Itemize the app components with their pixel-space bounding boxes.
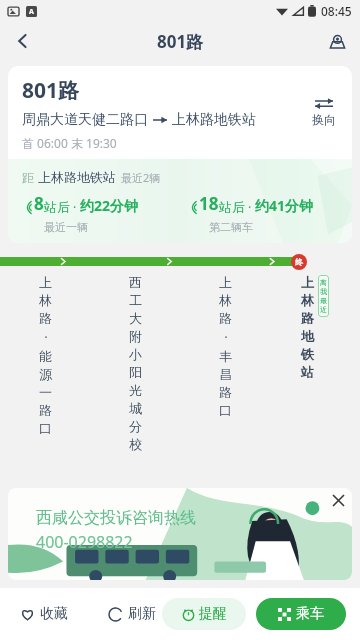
staticText: 收藏 [40,605,68,623]
staticText: 站后 [44,199,70,215]
staticText: 丰 [219,348,232,364]
staticText: 口 [39,420,52,436]
staticText: 附 [129,328,142,344]
staticText: 上林路地铁站 [38,169,116,185]
staticText: A [29,7,34,17]
staticText: 小 [129,346,142,362]
staticText: 上 [301,274,314,290]
staticText: 路 [39,310,52,326]
staticText: · [44,328,48,346]
staticText: 站 [301,364,314,380]
staticText: 提醒 [199,605,227,623]
button[interactable]: Map [320,24,354,58]
staticText: 校 [129,436,142,452]
staticText: · [73,199,77,215]
staticText: 最 [320,296,327,305]
staticText: 乘车 [296,605,324,623]
staticText: 光 [129,382,142,398]
staticText: 分 [129,418,142,434]
button[interactable]: Close ad [328,490,348,510]
staticText: 路 [219,384,232,400]
staticText: 刷新 [128,605,156,623]
button[interactable]: 收藏 [14,599,74,629]
staticText: · [248,199,252,215]
staticText: 约22分钟 [80,196,139,215]
staticText: 林 [39,292,52,308]
button[interactable]: 换向 [308,94,340,131]
staticText: 地 [301,328,314,344]
button[interactable]: 西咸公交投诉咨询热线 [8,488,352,580]
staticText: 上 [39,274,52,290]
staticText: 最近一辆 [44,220,88,234]
staticText: 一 [39,384,52,400]
staticText: 首 06:00 末 19:30 [22,135,117,151]
button[interactable]: 提醒 [162,598,246,630]
staticText: 终 [295,257,303,267]
staticText: 第二辆车 [209,220,253,234]
staticText: 站后 [219,199,245,215]
staticText: 离 [320,278,327,287]
staticText: 约41分钟 [255,196,314,215]
staticText: 路 [301,310,314,326]
staticText: 大 [129,310,142,326]
staticText: 路 [39,402,52,418]
staticText: 阳 [129,364,142,380]
staticText: 换向 [312,112,336,127]
button[interactable]: Back [4,22,42,60]
staticText: 林 [219,292,232,308]
staticText: 源 [39,366,52,382]
staticText: 801路 [22,76,80,105]
staticText: 路 [219,310,232,326]
staticText: 上 [219,274,232,290]
staticText: 西咸公交投诉咨询热线 [36,508,196,528]
staticText: 铁 [301,346,314,362]
staticText: 林 [301,292,314,308]
staticText: 400-0298822 [36,531,133,553]
staticText: 城 [129,400,142,416]
staticText: 距 [22,170,34,185]
button[interactable]: 刷新 [102,599,162,629]
staticText: 08:45 [321,3,352,19]
staticText: 18 [199,192,219,215]
staticText: 工 [129,292,142,308]
staticText: 8 [34,192,44,215]
staticText: 上林路地铁站 [172,111,256,129]
staticText: 周鼎大道天健二路口 [22,111,148,129]
staticText: 昌 [219,366,232,382]
staticText: · [224,328,228,346]
staticText: 口 [219,402,232,418]
staticText: 最近2辆 [121,170,161,185]
staticText: 西 [129,274,142,290]
staticText: 近 [320,305,327,314]
button[interactable]: 乘车 [256,598,346,630]
staticText: 我 [320,287,327,296]
staticText: 801路 [157,30,204,53]
staticText: 能 [39,348,52,364]
